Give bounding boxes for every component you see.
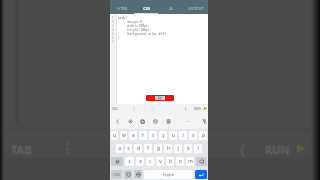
staticText: TAB bbox=[11, 143, 32, 158]
button[interactable]: HTML bbox=[110, 0, 134, 14]
button[interactable]: Language bbox=[134, 170, 142, 179]
staticText: height:100px; bbox=[118, 28, 152, 32]
staticText: margin:0; bbox=[118, 20, 144, 24]
staticText: TAB bbox=[12, 142, 33, 157]
staticText: body{ bbox=[118, 16, 128, 20]
button[interactable]: Enter bbox=[195, 170, 207, 179]
staticText: m bbox=[188, 158, 193, 165]
staticText: s bbox=[127, 145, 130, 152]
staticText: c bbox=[149, 158, 152, 165]
button[interactable]: p bbox=[199, 131, 207, 140]
button[interactable]: w bbox=[120, 131, 127, 140]
button[interactable]: GIF bbox=[164, 117, 172, 125]
button[interactable]: o bbox=[189, 131, 197, 140]
staticText: { bbox=[241, 139, 247, 158]
staticText: RUN bbox=[266, 142, 291, 157]
button[interactable]: t bbox=[149, 131, 157, 140]
staticText: k bbox=[187, 145, 190, 152]
button[interactable]: c bbox=[146, 157, 154, 166]
button[interactable]: Shift bbox=[111, 157, 123, 166]
button[interactable]: Voice input bbox=[200, 117, 208, 125]
button[interactable]: Backspace bbox=[196, 157, 207, 166]
button[interactable]: x bbox=[136, 157, 144, 166]
button[interactable]: e bbox=[129, 131, 137, 140]
staticText: z bbox=[128, 158, 131, 165]
button[interactable]: Emoji bbox=[124, 170, 132, 179]
button[interactable]: d bbox=[134, 144, 142, 153]
staticText: TAB bbox=[10, 142, 31, 157]
staticText: ?123 bbox=[113, 173, 120, 177]
staticText: t bbox=[152, 132, 154, 139]
button[interactable]: y bbox=[159, 131, 167, 140]
staticText: a bbox=[118, 145, 121, 152]
staticText: background-color:#fff; bbox=[118, 32, 169, 36]
button[interactable]: n bbox=[176, 157, 184, 166]
staticText: TAB bbox=[112, 107, 118, 111]
staticText: d bbox=[137, 145, 140, 152]
button[interactable]: Clipboard bbox=[138, 117, 146, 125]
staticText: CSS bbox=[143, 6, 150, 11]
staticText: n bbox=[179, 158, 182, 165]
button[interactable]: k bbox=[184, 144, 192, 153]
staticText: RUN bbox=[265, 142, 290, 157]
button[interactable]: i bbox=[179, 131, 187, 140]
button[interactable]: b bbox=[166, 157, 174, 166]
staticText: { bbox=[240, 140, 246, 159]
staticText: RUN bbox=[265, 143, 290, 158]
button[interactable]: u bbox=[169, 131, 177, 140]
staticText: b bbox=[169, 158, 172, 165]
staticText: l bbox=[197, 145, 199, 152]
staticText: 3 bbox=[112, 24, 114, 28]
button[interactable]: More bbox=[184, 117, 192, 125]
button[interactable]: l bbox=[194, 144, 202, 153]
staticText: o bbox=[192, 132, 195, 139]
button[interactable]: g bbox=[154, 144, 162, 153]
button[interactable]: Back bbox=[113, 117, 121, 125]
staticText: JS bbox=[169, 6, 173, 11]
staticText: RUN bbox=[194, 107, 201, 111]
staticText: 6 bbox=[112, 36, 114, 40]
staticText: 4 bbox=[112, 28, 114, 32]
staticText: TAB bbox=[11, 141, 32, 156]
button[interactable]: z bbox=[125, 157, 134, 166]
button[interactable]: m bbox=[186, 157, 194, 166]
button[interactable]: English bbox=[144, 170, 193, 179]
button[interactable]: JS bbox=[158, 0, 183, 14]
staticText: q bbox=[113, 132, 116, 139]
button[interactable]: OUTPUT bbox=[183, 0, 208, 14]
staticText: { bbox=[240, 139, 246, 158]
staticText: w bbox=[122, 132, 126, 139]
button[interactable]: h bbox=[164, 144, 172, 153]
staticText: OUTPUT bbox=[188, 6, 204, 11]
button[interactable]: a bbox=[116, 144, 123, 153]
button[interactable]: Ad bbox=[146, 95, 174, 101]
staticText: g bbox=[157, 145, 160, 152]
staticText: p bbox=[202, 132, 205, 139]
button[interactable]: ?123 bbox=[111, 170, 122, 179]
staticText: RUN bbox=[264, 142, 289, 157]
staticText: { bbox=[240, 138, 246, 157]
staticText: { bbox=[185, 106, 187, 111]
staticText: Ad bbox=[158, 96, 162, 100]
staticText: HTML bbox=[117, 6, 128, 11]
staticText: f bbox=[147, 145, 149, 152]
staticText: { bbox=[239, 139, 245, 158]
button[interactable]: Stickers bbox=[151, 117, 159, 125]
staticText: 2 bbox=[112, 20, 114, 24]
staticText: } bbox=[118, 36, 120, 40]
button[interactable]: v bbox=[156, 157, 164, 166]
button[interactable]: q bbox=[111, 131, 118, 140]
staticText: x bbox=[139, 158, 142, 165]
button[interactable]: f bbox=[144, 144, 152, 153]
staticText: 1 bbox=[112, 16, 114, 20]
staticText: English bbox=[163, 173, 174, 177]
button[interactable]: j bbox=[174, 144, 182, 153]
staticText: j bbox=[177, 145, 179, 152]
button[interactable]: CSS bbox=[134, 0, 158, 14]
staticText: v bbox=[159, 158, 162, 165]
staticText: RUN bbox=[265, 141, 290, 156]
button[interactable]: r bbox=[139, 131, 147, 140]
button[interactable]: Settings bbox=[126, 117, 134, 125]
staticText: width:700px; bbox=[118, 24, 150, 28]
button[interactable]: s bbox=[125, 144, 132, 153]
